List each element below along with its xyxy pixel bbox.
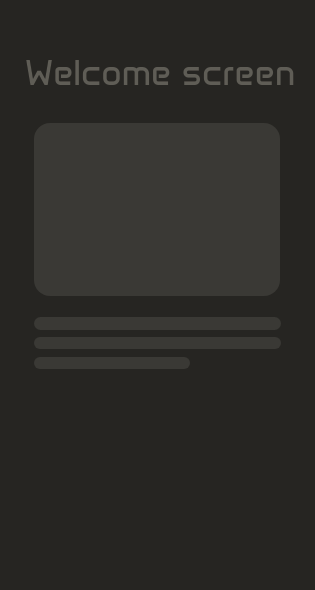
staticText: Welcome screen bbox=[25, 51, 296, 94]
